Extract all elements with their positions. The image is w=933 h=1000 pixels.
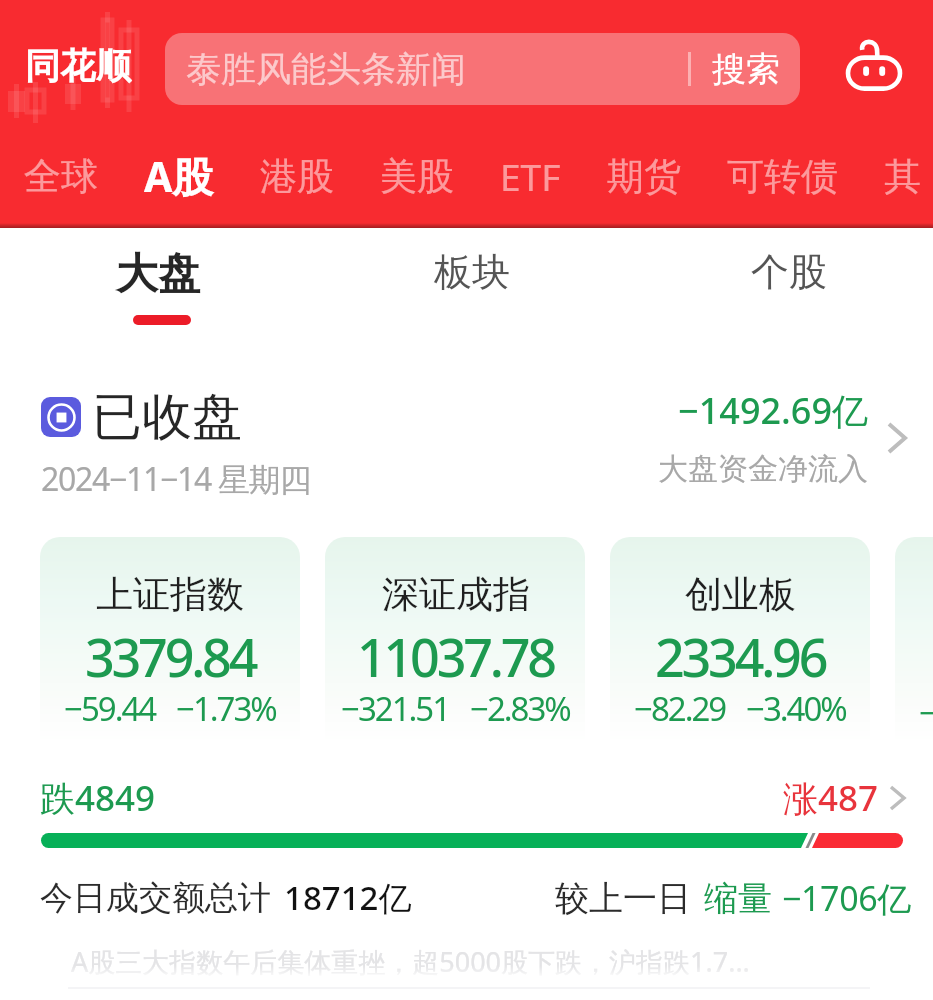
staticText: 缩量	[704, 877, 772, 920]
staticText: −33.11	[919, 690, 933, 735]
staticText: 港股	[260, 153, 334, 200]
staticText: ETF	[500, 151, 561, 201]
staticText: 涨487	[783, 774, 879, 822]
staticText: 已收盘	[92, 386, 242, 449]
staticText: 同花顺	[25, 44, 132, 88]
staticText: 2334.96	[655, 621, 826, 692]
staticText: 大盘资金净流入	[658, 450, 868, 488]
button[interactable]: ETF	[477, 151, 584, 201]
button[interactable]: 美股	[357, 153, 477, 200]
button[interactable]: 上证指数	[40, 537, 300, 743]
staticText: 全球	[24, 153, 98, 200]
button[interactable]: 可转债	[704, 153, 861, 200]
button[interactable]: 跌4849	[0, 775, 933, 855]
staticText: 11037.78	[357, 621, 554, 692]
staticText: 可转债	[727, 153, 838, 200]
staticText: A股	[144, 148, 214, 204]
staticText: 其他	[884, 153, 910, 200]
staticText: 今日成交额总计	[40, 877, 271, 919]
button[interactable]: 个股	[719, 236, 859, 336]
button[interactable]: AI assistant	[841, 33, 907, 99]
staticText: 创业板	[685, 571, 796, 618]
staticText: 大盘	[116, 248, 200, 301]
button[interactable]: 其他	[861, 153, 933, 200]
staticText: 3379.84	[85, 621, 256, 692]
button[interactable]: 港股	[237, 153, 357, 200]
button[interactable]: 已收盘	[0, 378, 933, 496]
staticText: −321.51	[341, 686, 450, 731]
button[interactable]: 今日成交额总计	[0, 875, 933, 923]
staticText: 深证成指	[382, 571, 530, 618]
button[interactable]: 大盘	[88, 236, 228, 336]
staticText: 期货	[607, 153, 681, 200]
other: Rise and fall details	[889, 784, 907, 812]
staticText: 18712亿	[284, 875, 412, 920]
button[interactable]: 科创50	[895, 537, 933, 743]
button[interactable]: A股	[121, 148, 237, 204]
staticText: −1492.69亿	[678, 386, 869, 435]
staticText: 搜索	[712, 48, 780, 91]
staticText: −2.83%	[470, 686, 570, 731]
staticText: 个股	[751, 248, 827, 296]
staticText: −1706亿	[782, 875, 911, 921]
button[interactable]: 泰胜风能头条新闻	[165, 33, 800, 105]
button[interactable]: 期货	[584, 153, 704, 200]
staticText: −59.44	[64, 686, 156, 731]
button[interactable]: A股三大指数午后集体重挫，超5000股下跌，沪指跌1.7...	[71, 943, 750, 980]
staticText: 跌4849	[40, 774, 156, 822]
staticText: A股三大指数午后集体重挫，超5000股下跌，沪指跌1.7...	[71, 943, 750, 980]
staticText: −82.29	[634, 686, 726, 731]
staticText: 泰胜风能头条新闻	[186, 47, 466, 91]
staticText: 2024−11−14 星期四	[41, 457, 311, 501]
staticText: 上证指数	[96, 571, 244, 618]
staticText: −3.40%	[746, 686, 846, 731]
staticText: −1.73%	[176, 686, 276, 731]
staticText: 较上一日	[555, 877, 691, 920]
staticText: 美股	[380, 153, 454, 200]
button[interactable]: 深证成指	[325, 537, 585, 743]
button[interactable]: 板块	[402, 236, 542, 336]
other: Net capital flow details	[887, 421, 909, 455]
button[interactable]: 创业板	[610, 537, 870, 743]
staticText: 板块	[434, 248, 510, 296]
button[interactable]: 全球	[1, 153, 121, 200]
